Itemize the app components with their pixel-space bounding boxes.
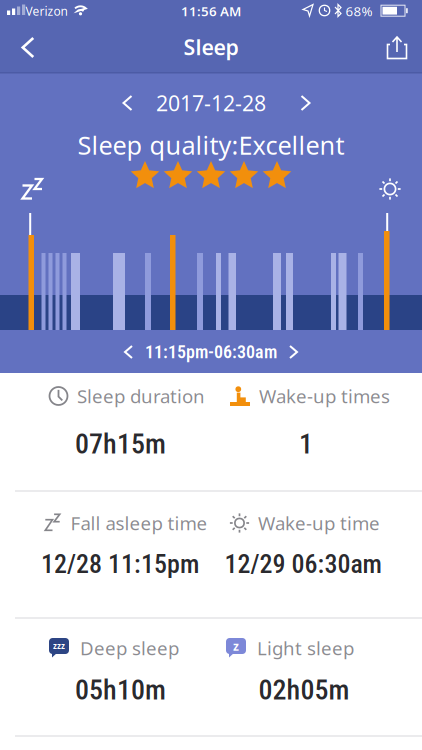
button[interactable]	[110, 334, 146, 370]
staticText: 12/28 11:15pm	[41, 549, 199, 579]
staticText: 11:56 AM	[181, 2, 241, 20]
staticText: Fall asleep time	[70, 511, 207, 535]
staticText: 02h05m	[258, 674, 349, 706]
staticText: 1	[299, 428, 313, 460]
staticText: Verizon	[25, 3, 67, 19]
button[interactable]	[285, 83, 325, 123]
button[interactable]	[375, 25, 419, 69]
staticText: 05h10m	[75, 674, 166, 706]
staticText: Sleep	[183, 33, 238, 61]
staticText: Wake-up times	[259, 384, 390, 408]
staticText: 07h15m	[75, 428, 166, 460]
button[interactable]	[275, 334, 311, 370]
staticText: z	[233, 638, 239, 654]
staticText: 2017-12-28	[156, 89, 266, 117]
staticText: 12/29 06:30am	[224, 549, 381, 579]
staticText: 11:15pm-06:30am	[145, 341, 277, 363]
staticText: 68%	[345, 2, 372, 20]
button[interactable]	[107, 83, 147, 123]
staticText: Sleep quality:Excellent	[77, 128, 344, 162]
button[interactable]	[6, 25, 50, 69]
staticText: Deep sleep	[80, 636, 179, 660]
staticText: Wake-up time	[258, 511, 380, 535]
staticText: Light sleep	[257, 636, 354, 660]
staticText: Sleep duration	[77, 384, 205, 408]
staticText: zzz	[53, 641, 65, 651]
